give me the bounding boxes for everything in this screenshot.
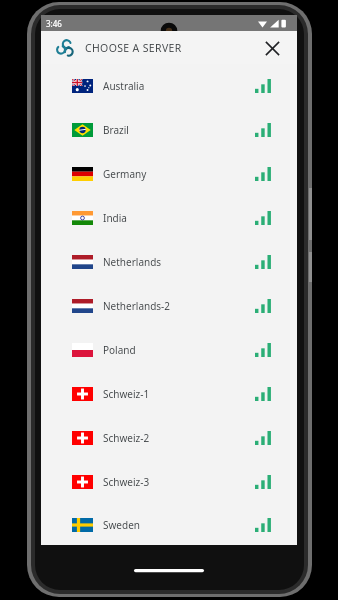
button[interactable]: App logo <box>54 37 76 59</box>
button[interactable]: Schweiz-1 <box>41 372 297 416</box>
button[interactable]: Poland <box>41 328 297 372</box>
button[interactable]: Netherlands <box>41 240 297 284</box>
staticText: 3:46 <box>46 18 62 29</box>
button[interactable]: Schweiz-3 <box>41 460 297 504</box>
button[interactable]: Brazil <box>41 108 297 152</box>
button[interactable]: India <box>41 196 297 240</box>
staticText: Poland <box>103 343 136 357</box>
staticText: Brazil <box>103 123 129 137</box>
staticText: Schweiz-1 <box>103 387 150 401</box>
staticText: CHOOSE A SERVER <box>85 41 182 55</box>
staticText: Netherlands <box>103 255 162 269</box>
button[interactable]: Netherlands-2 <box>41 284 297 328</box>
button[interactable]: Germany <box>41 152 297 196</box>
staticText: Sweden <box>103 518 140 532</box>
staticText: Germany <box>103 167 147 181</box>
staticText: Schweiz-3 <box>103 475 150 489</box>
staticText: Australia <box>103 79 145 93</box>
button[interactable]: Australia <box>41 64 297 108</box>
button[interactable]: Close <box>258 34 286 62</box>
staticText: India <box>103 211 127 225</box>
staticText: Netherlands-2 <box>103 299 171 313</box>
button[interactable]: Sweden <box>41 504 297 545</box>
staticText: Schweiz-2 <box>103 431 150 445</box>
button[interactable]: Schweiz-2 <box>41 416 297 460</box>
